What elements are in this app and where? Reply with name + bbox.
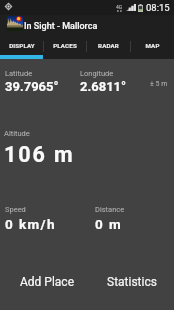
staticText: DISPLAY: [9, 42, 35, 49]
button[interactable]: RADAR: [86, 36, 130, 59]
button[interactable]: Statistics: [89, 269, 174, 295]
button[interactable]: MAP: [130, 36, 174, 59]
staticText: 0 m: [95, 216, 122, 232]
staticText: 4G: [116, 4, 123, 10]
staticText: Distance: [95, 205, 125, 214]
staticText: 08:15: [146, 2, 170, 13]
staticText: In Sight - Mallorca: [24, 21, 98, 32]
staticText: Speed: [5, 205, 26, 214]
staticText: 106 m: [4, 142, 75, 167]
button[interactable]: DISPLAY: [0, 36, 43, 59]
staticText: 2.6811°: [80, 79, 127, 94]
other: GPS location: [3, 1, 14, 12]
staticText: MAP: [145, 42, 160, 49]
staticText: RADAR: [98, 42, 119, 49]
staticText: Add Place: [20, 275, 74, 289]
button[interactable]: Add Place: [5, 269, 89, 295]
button[interactable]: PLACES: [43, 36, 86, 59]
staticText: 0 km/h: [5, 216, 56, 232]
staticText: Latitude: [5, 69, 33, 78]
staticText: Longitude: [80, 69, 114, 78]
staticText: ± 5 m: [150, 80, 168, 88]
staticText: PLACES: [53, 42, 77, 49]
staticText: Statistics: [107, 275, 157, 289]
staticText: 39.7965°: [5, 79, 59, 94]
staticText: Altitude: [4, 129, 30, 138]
